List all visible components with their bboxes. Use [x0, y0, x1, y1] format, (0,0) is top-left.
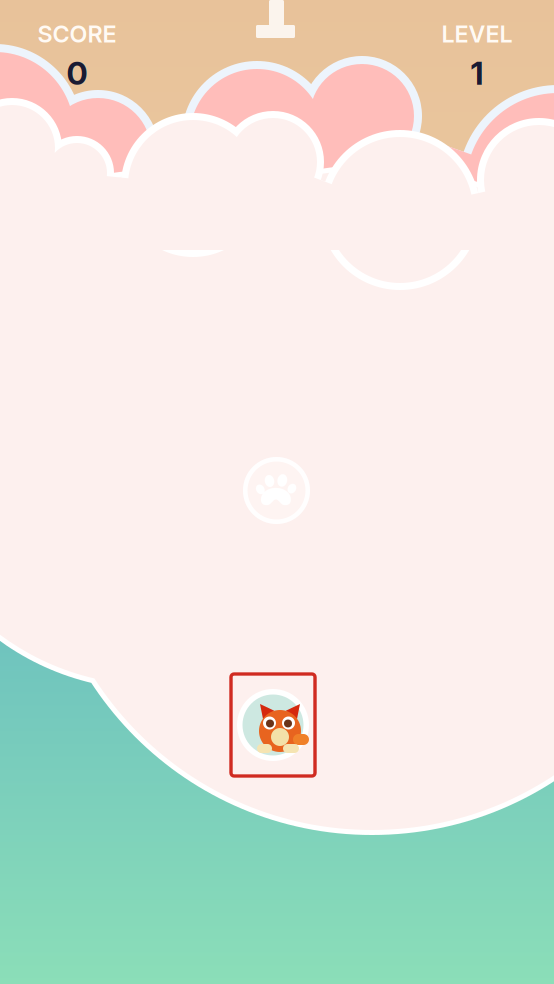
- staticText: SCORE: [37, 20, 116, 48]
- staticText: 0: [66, 54, 87, 92]
- staticText: 1: [470, 54, 483, 92]
- button[interactable]: Paw: [243, 457, 310, 524]
- button[interactable]: Menu: [256, 0, 295, 34]
- staticText: LEVEL: [441, 20, 512, 48]
- button[interactable]: Cat card: [231, 674, 315, 776]
